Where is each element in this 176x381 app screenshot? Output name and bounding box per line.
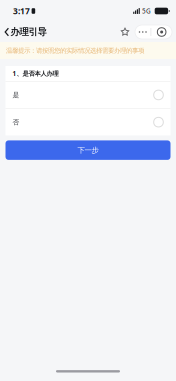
button[interactable]: 否: [5, 109, 170, 135]
button[interactable]: 返回: [0, 22, 50, 42]
staticText: 3:17: [13, 5, 30, 17]
staticText: 办理引导: [10, 26, 46, 38]
staticText: 1、是否本人办理: [12, 69, 58, 78]
button[interactable]: 收藏: [115, 24, 135, 40]
button[interactable]: 下一步: [0, 140, 176, 160]
button[interactable]: 是: [5, 82, 170, 108]
staticText: 下一步: [77, 145, 98, 155]
staticText: 5G: [142, 7, 151, 15]
button[interactable]: 关闭: [151, 25, 172, 39]
button[interactable]: 更多: [135, 25, 150, 39]
staticText: 否: [12, 118, 19, 126]
staticText: 温馨提示：请按照您的实际情况选择需要办理的事项: [6, 46, 144, 54]
staticText: 是: [12, 91, 19, 99]
